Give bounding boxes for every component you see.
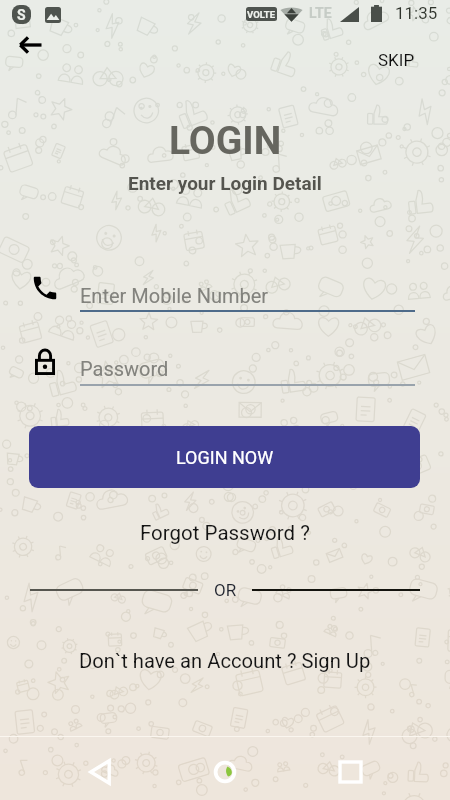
staticText: LTE bbox=[309, 5, 332, 21]
staticText: Enter your Login Detail bbox=[128, 172, 322, 194]
staticText: Don`t have an Account ? Sign Up bbox=[79, 649, 371, 673]
staticText: S bbox=[17, 7, 26, 23]
staticText: Enter Mobile Number bbox=[80, 284, 269, 307]
staticText: LOGIN bbox=[169, 118, 282, 164]
staticText: 11:35 bbox=[395, 3, 438, 23]
staticText: Password bbox=[80, 357, 169, 380]
button[interactable]: Forgot Password ? bbox=[140, 521, 310, 545]
button[interactable]: LOGIN NOW bbox=[29, 426, 420, 488]
button[interactable]: Home bbox=[203, 750, 247, 794]
button[interactable]: Back bbox=[78, 750, 122, 794]
button[interactable]: Recents bbox=[328, 750, 372, 794]
staticText: Forgot Password ? bbox=[140, 521, 310, 545]
staticText: LOGIN NOW bbox=[176, 447, 274, 468]
staticText: SKIP bbox=[378, 50, 415, 70]
staticText: VOLTE bbox=[247, 9, 276, 20]
button[interactable]: SKIP bbox=[378, 50, 415, 70]
button[interactable]: Back bbox=[6, 23, 50, 67]
staticText: OR bbox=[214, 580, 237, 600]
button[interactable]: Don`t have an Account ? Sign Up bbox=[79, 649, 371, 673]
